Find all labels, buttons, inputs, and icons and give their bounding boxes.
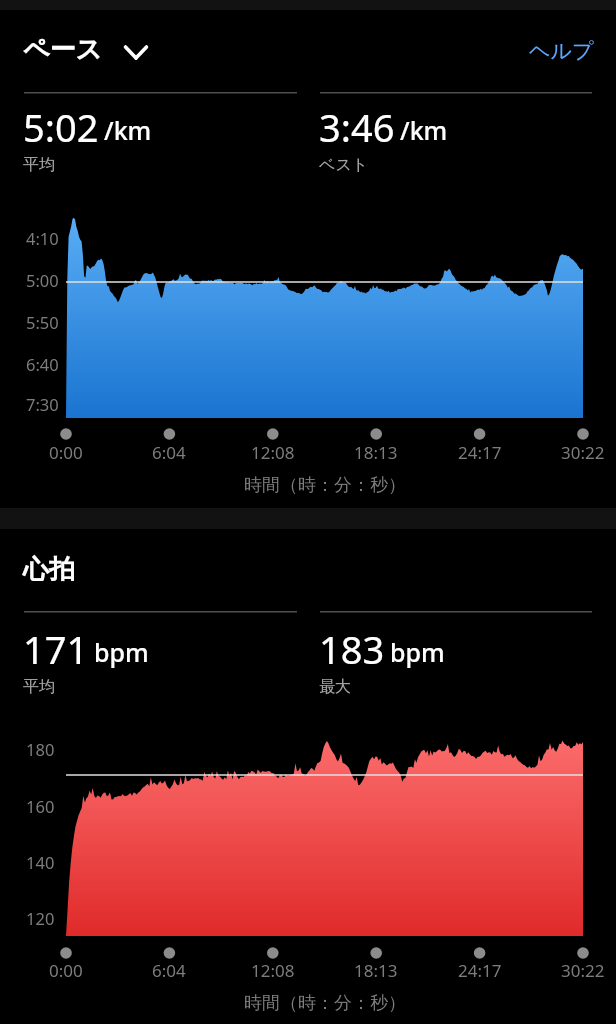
- staticText: 6:40: [26, 353, 59, 375]
- staticText: 7:30: [26, 393, 59, 415]
- staticText: 171: [23, 623, 89, 675]
- staticText: 時間（時：分：秒）: [244, 992, 406, 1015]
- staticText: 5:00: [26, 269, 59, 291]
- staticText: 時間（時：分：秒）: [244, 474, 406, 497]
- other: Change metric: [121, 35, 151, 65]
- staticText: 30:22: [561, 959, 605, 982]
- button[interactable]: Heart rate graph: [20, 730, 590, 940]
- staticText: 18:13: [354, 441, 398, 464]
- staticText: 24:17: [458, 441, 502, 464]
- button[interactable]: ペース: [23, 33, 151, 66]
- staticText: 120: [26, 907, 55, 929]
- staticText: 4:10: [26, 227, 59, 249]
- staticText: 6:04: [152, 959, 186, 982]
- staticText: 最大: [319, 677, 351, 697]
- staticText: /km: [104, 113, 152, 147]
- staticText: bpm: [94, 635, 149, 669]
- staticText: 160: [26, 795, 55, 817]
- staticText: 6:04: [152, 441, 186, 464]
- staticText: 心拍: [23, 553, 75, 586]
- staticText: 180: [26, 738, 55, 760]
- staticText: 18:13: [354, 959, 398, 982]
- staticText: 5:02: [23, 101, 99, 153]
- staticText: 30:22: [561, 441, 605, 464]
- button[interactable]: ヘルプ: [525, 34, 598, 68]
- staticText: 平均: [23, 155, 55, 175]
- staticText: 3:46: [319, 101, 395, 153]
- button[interactable]: Pace graph: [20, 196, 590, 421]
- staticText: 140: [26, 851, 55, 873]
- staticText: 183: [319, 623, 385, 675]
- staticText: ペース: [23, 33, 103, 66]
- staticText: 5:50: [26, 311, 59, 333]
- button[interactable]: 心拍: [23, 553, 75, 586]
- staticText: ベスト: [319, 155, 369, 175]
- staticText: 24:17: [458, 959, 502, 982]
- staticText: /km: [400, 113, 448, 147]
- staticText: 12:08: [251, 959, 295, 982]
- staticText: 12:08: [251, 441, 295, 464]
- staticText: bpm: [390, 635, 445, 669]
- staticText: ヘルプ: [529, 38, 594, 64]
- staticText: 平均: [23, 677, 55, 697]
- staticText: 0:00: [49, 959, 83, 982]
- staticText: 0:00: [49, 441, 83, 464]
